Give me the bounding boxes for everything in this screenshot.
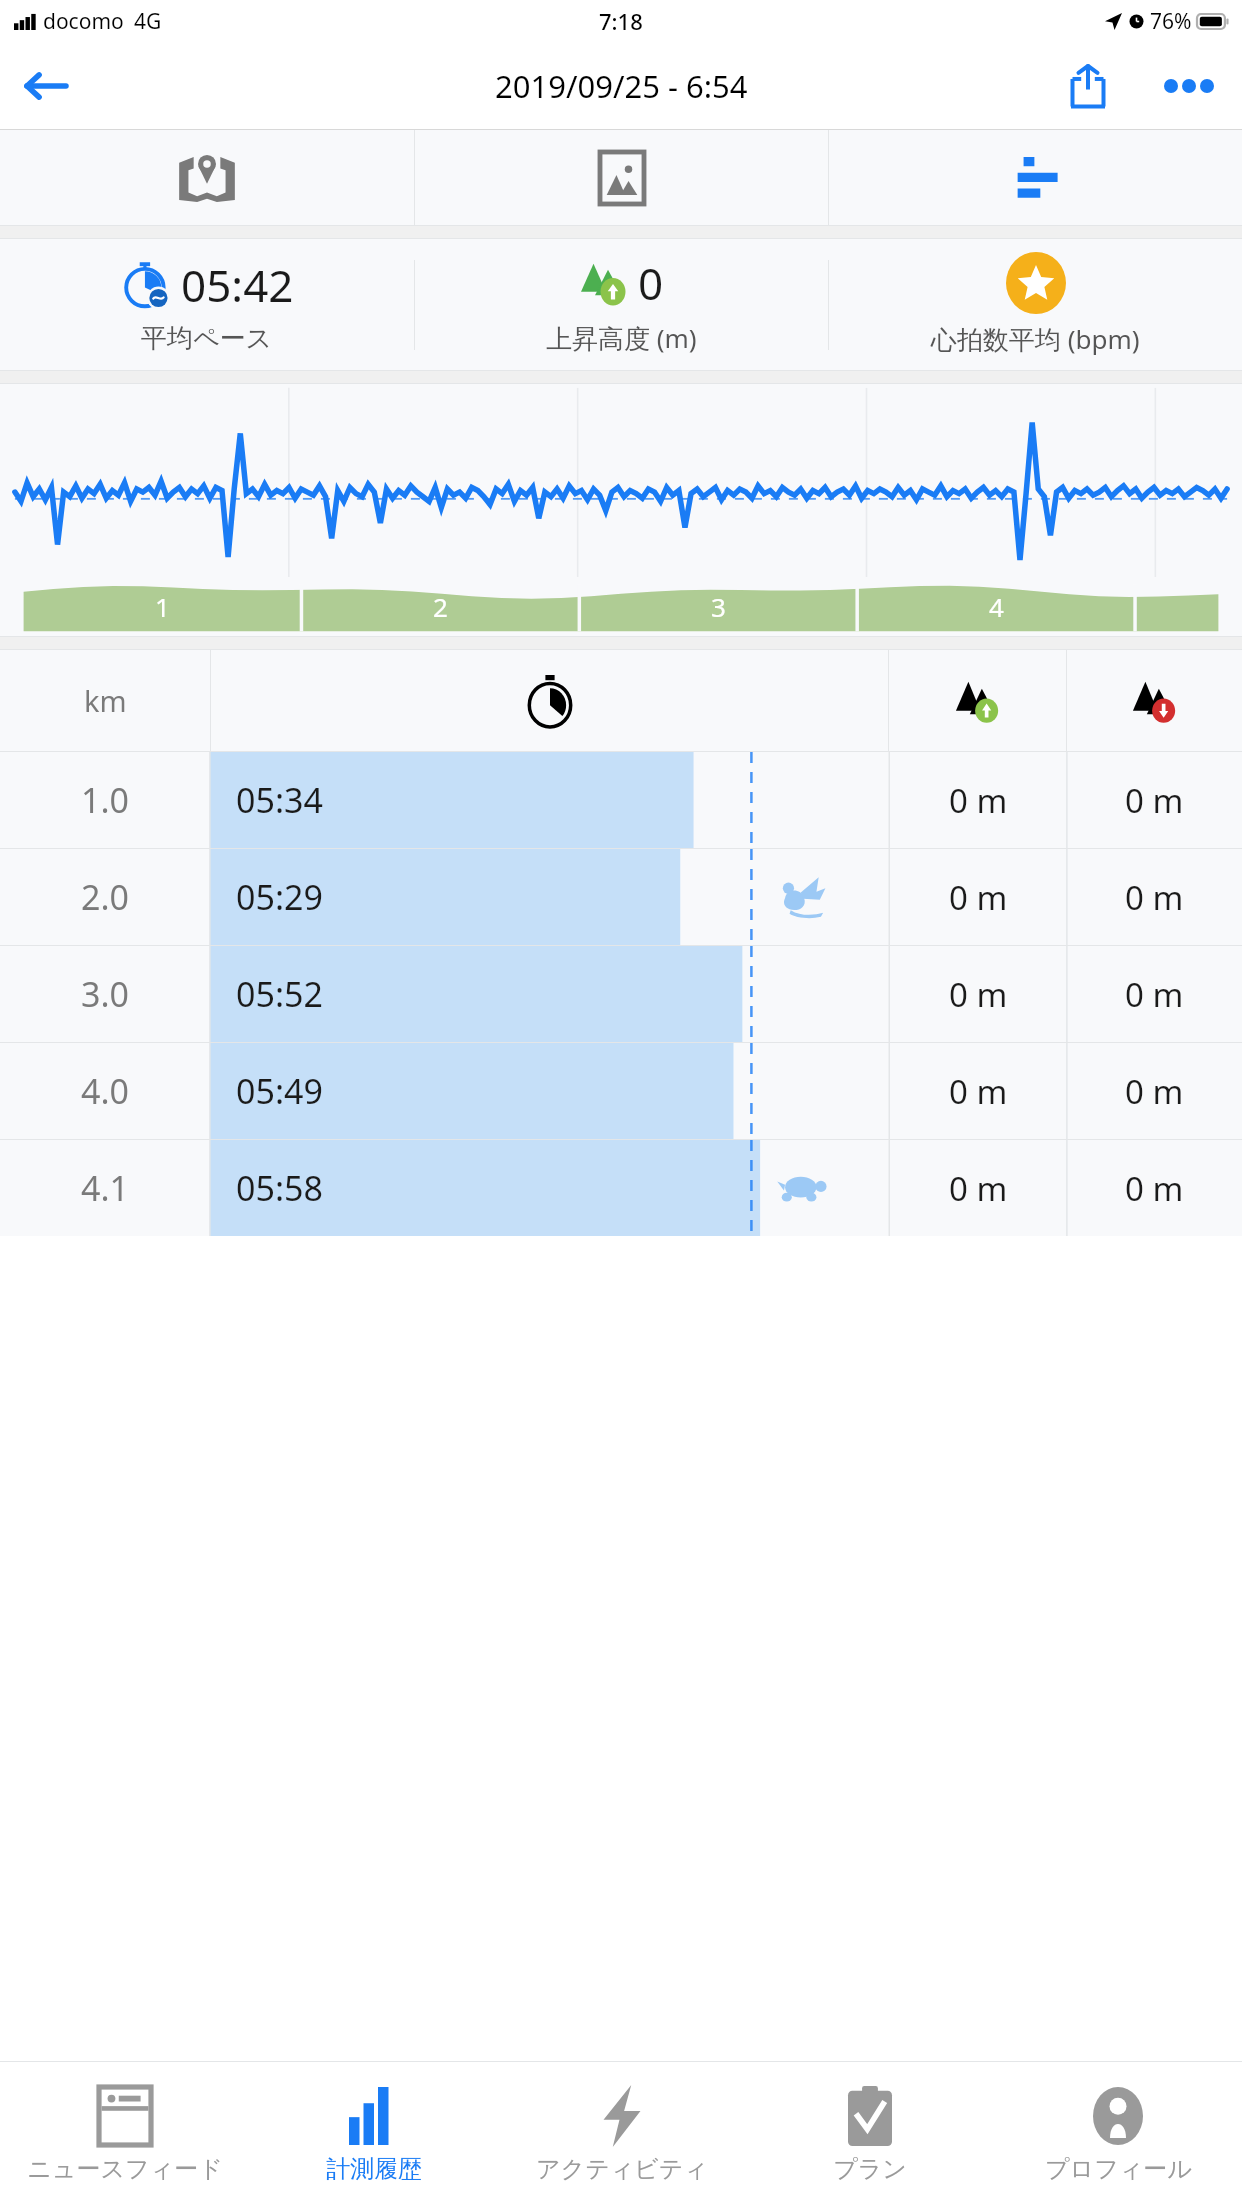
staticText: 0 m <box>949 1166 1008 1211</box>
staticText: プラン <box>833 2154 907 2184</box>
button[interactable]: 1.0 <box>0 752 1242 848</box>
button[interactable]: 05:42 <box>0 239 414 370</box>
staticText: 2019/09/25 - 6:54 <box>495 65 748 107</box>
staticText: 05:52 <box>236 971 323 1017</box>
staticText: 3 <box>711 589 726 624</box>
staticText: アクティビティ <box>536 2154 708 2184</box>
button[interactable]: 0 <box>415 239 828 370</box>
staticText: docomo <box>43 7 124 36</box>
staticText: プロフィール <box>1045 2154 1192 2184</box>
staticText: 4.1 <box>81 1165 130 1211</box>
button[interactable]: 3.0 <box>0 946 1242 1042</box>
staticText: 3.0 <box>81 971 130 1017</box>
staticText: 0 m <box>949 778 1008 823</box>
staticText: 05:34 <box>236 777 323 823</box>
staticText: 1 <box>155 589 170 624</box>
staticText: 05:58 <box>236 1165 323 1211</box>
staticText: 4G <box>134 7 162 36</box>
staticText: 2.0 <box>81 874 130 920</box>
staticText: 計測履歴 <box>326 2154 422 2184</box>
staticText: 0 m <box>1125 778 1184 823</box>
staticText: km <box>84 681 127 720</box>
staticText: 0 m <box>1125 972 1184 1017</box>
staticText: 0 m <box>1125 1166 1184 1211</box>
staticText: 0 m <box>1125 1069 1184 1114</box>
button[interactable]: 2.0 <box>0 849 1242 945</box>
button[interactable]: ニュースフィード <box>0 2062 249 2205</box>
button[interactable]: Statistics <box>829 130 1242 225</box>
staticText: 0 m <box>949 875 1008 920</box>
staticText: 76% <box>1150 7 1192 36</box>
staticText: 上昇高度 (m) <box>546 320 697 356</box>
button[interactable]: Map <box>0 130 414 225</box>
button[interactable]: 心拍数平均 (bpm) <box>829 239 1242 370</box>
button[interactable]: Share <box>1040 42 1136 129</box>
button[interactable]: プラン <box>746 2062 994 2205</box>
staticText: 平均ペース <box>141 322 273 355</box>
staticText: 4 <box>989 589 1004 624</box>
button[interactable]: 計測履歴 <box>249 2062 498 2205</box>
staticText: 4.0 <box>81 1068 130 1114</box>
staticText: 0 m <box>949 1069 1008 1114</box>
staticText: 05:42 <box>181 255 294 315</box>
staticText: 2 <box>433 589 448 624</box>
button[interactable]: 4.0 <box>0 1043 1242 1139</box>
staticText: 0 <box>638 253 664 313</box>
staticText: 1.0 <box>81 777 130 823</box>
staticText: 心拍数平均 (bpm) <box>931 321 1140 357</box>
staticText: 0 m <box>1125 875 1184 920</box>
button[interactable]: プロフィール <box>994 2062 1242 2205</box>
button[interactable]: More options <box>1136 42 1242 129</box>
button[interactable]: Photos <box>415 130 828 225</box>
button[interactable]: アクティビティ <box>498 2062 746 2205</box>
staticText: ニュースフィード <box>27 2154 223 2184</box>
staticText: 05:29 <box>236 874 323 920</box>
staticText: 7:18 <box>599 6 643 36</box>
staticText: 05:49 <box>236 1068 323 1114</box>
button[interactable]: Back <box>0 42 90 129</box>
staticText: 0 m <box>949 972 1008 1017</box>
button[interactable]: 4.1 <box>0 1140 1242 1236</box>
